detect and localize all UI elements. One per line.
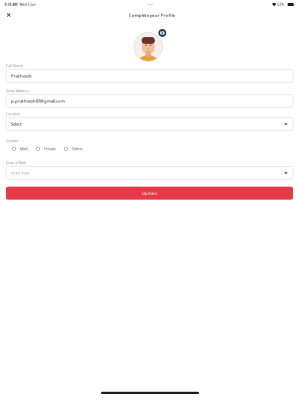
staticText: Complete your Profile [129,12,175,18]
button[interactable]: Change profile photo [133,28,167,62]
staticText: Wed 5 Jun [18,2,36,7]
staticText: Location [6,111,20,116]
button[interactable]: Update [6,187,293,200]
staticText: Female [44,146,56,151]
staticText: Email Address [6,88,29,93]
button[interactable]: Close [3,10,14,20]
button[interactable]: Male [12,145,28,153]
staticText: 8:38 AM [5,2,18,7]
staticText: Update [142,190,157,196]
staticText: Date of Birth [6,160,26,165]
staticText: Full Name [6,63,23,68]
staticText: Pratheesh [11,73,32,79]
staticText: 62% [276,2,284,7]
staticText: Select [11,121,22,127]
staticText: p.pratheesh87@gmail.com [11,98,65,104]
staticText: Others [72,146,83,151]
staticText: 01-01-1970 [11,170,29,176]
button[interactable]: Others [64,145,83,153]
staticText: Gender [6,138,18,143]
button[interactable]: Female [36,145,56,153]
staticText: Male [20,146,28,151]
